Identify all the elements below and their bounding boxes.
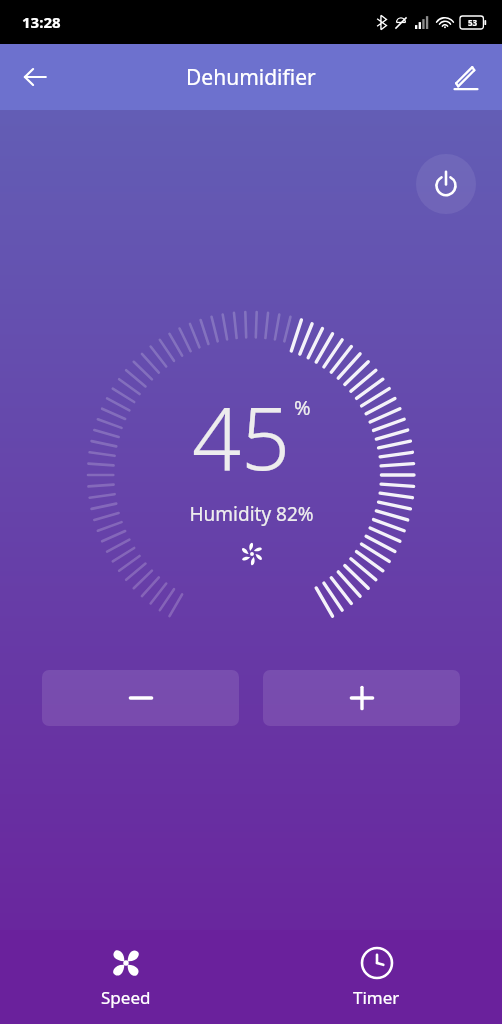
staticText: Dehumidifier: [186, 63, 316, 92]
button[interactable]: Increase: [263, 670, 460, 726]
staticText: %: [294, 394, 311, 421]
staticText: Humidity 82%: [189, 501, 314, 527]
button[interactable]: Speed: [0, 930, 251, 1024]
button[interactable]: Power: [416, 154, 476, 214]
button[interactable]: Timer: [251, 930, 502, 1024]
staticText: 45: [192, 378, 291, 495]
button[interactable]: Edit: [440, 51, 492, 103]
staticText: 53: [468, 17, 478, 28]
staticText: Speed: [101, 986, 151, 1009]
button[interactable]: Decrease: [42, 670, 239, 726]
staticText: Timer: [353, 986, 400, 1009]
staticText: 13:28: [22, 12, 61, 32]
button[interactable]: Back: [8, 50, 62, 104]
